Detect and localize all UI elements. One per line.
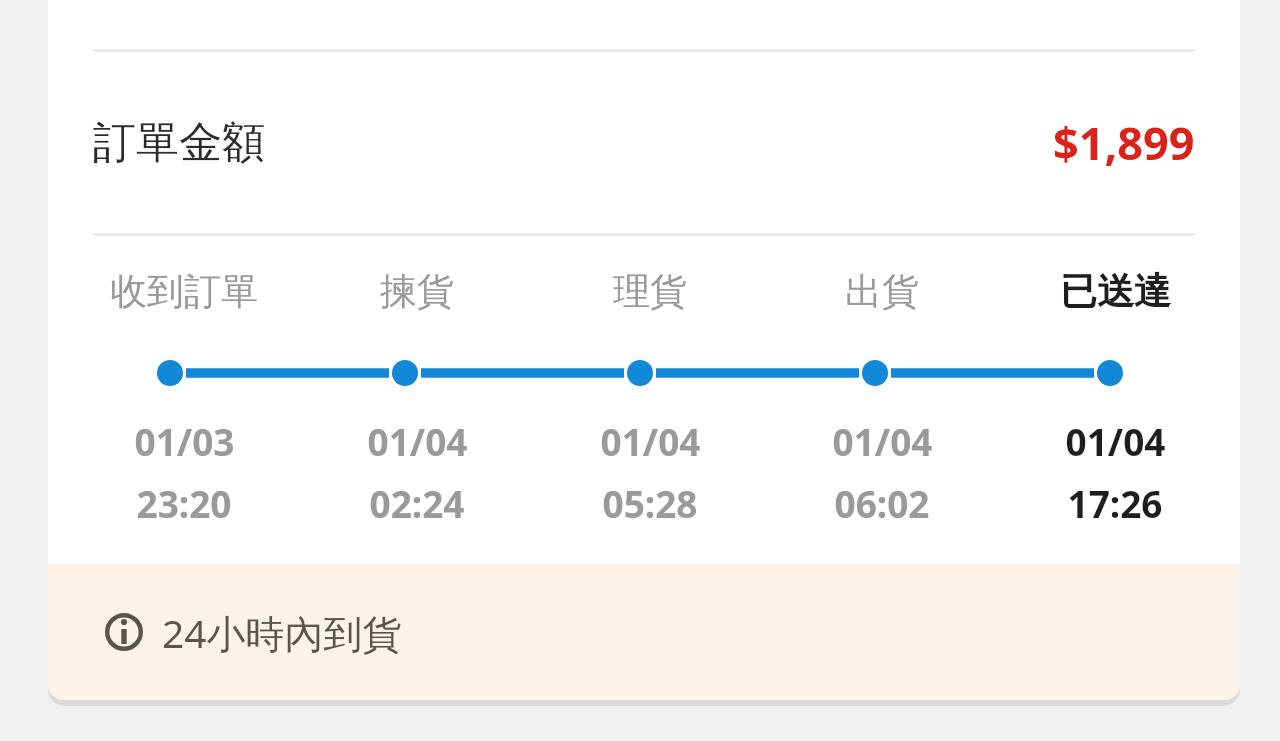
staticText: $1,899 [1053, 112, 1195, 173]
staticText: 訂單金額 [93, 116, 265, 170]
staticText: 收到訂單 [110, 268, 258, 315]
staticText: 出貨 [845, 268, 919, 315]
other: Information [105, 613, 143, 651]
staticText: 已送達 [1060, 268, 1171, 315]
staticText: 揀貨 [380, 268, 454, 315]
staticText: 06:02 [834, 478, 930, 528]
staticText: 01/04 [600, 416, 701, 466]
button[interactable]: 訂單金額 [48, 52, 1240, 233]
staticText: 02:24 [369, 478, 465, 528]
staticText: 23:20 [136, 478, 232, 528]
staticText: 05:28 [602, 478, 698, 528]
staticText: 01/04 [832, 416, 933, 466]
staticText: 01/04 [367, 416, 468, 466]
button[interactable]: Information [48, 564, 1240, 700]
staticText: 理貨 [613, 268, 687, 315]
staticText: 24小時內到貨 [162, 606, 402, 659]
staticText: 01/04 [1065, 416, 1166, 466]
staticText: 01/03 [134, 416, 235, 466]
staticText: 17:26 [1067, 478, 1163, 528]
